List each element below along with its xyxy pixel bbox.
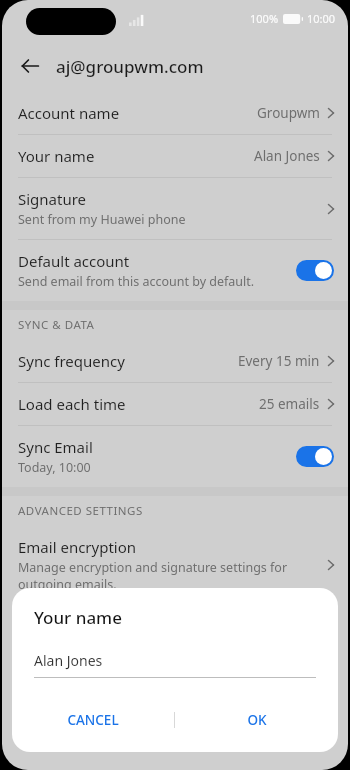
staticText: OK bbox=[247, 711, 267, 729]
staticText: Incoming settings bbox=[18, 615, 145, 635]
staticText: 25 emails bbox=[259, 395, 320, 413]
staticText: Alan Jones bbox=[34, 651, 103, 670]
staticText: SYNC & DATA bbox=[18, 317, 95, 333]
staticText: Alan Jones bbox=[254, 147, 320, 165]
button[interactable]: Back bbox=[10, 46, 50, 86]
button[interactable]: Sync frequency bbox=[2, 340, 348, 382]
staticText: ADVANCED SETTINGS bbox=[18, 503, 143, 519]
button[interactable]: Your name bbox=[2, 135, 348, 177]
staticText: Email encryption bbox=[18, 537, 137, 557]
staticText: Every 15 min bbox=[238, 352, 320, 370]
staticText: Sync Email bbox=[18, 437, 93, 457]
button[interactable]: Incoming settings bbox=[2, 604, 348, 646]
staticText: 10:00 bbox=[307, 11, 336, 26]
button[interactable]: Alan Jones bbox=[34, 651, 316, 678]
button[interactable]: OK bbox=[175, 698, 338, 742]
button[interactable]: Email encryption bbox=[2, 526, 348, 603]
button[interactable]: Account name bbox=[2, 92, 348, 134]
staticText: Default account bbox=[18, 251, 130, 271]
staticText: Send email from this account by default. bbox=[18, 273, 255, 290]
staticText: Manage encryption and signature settings… bbox=[18, 559, 288, 592]
button[interactable]: Default account bbox=[2, 240, 348, 301]
button[interactable]: Toggle bbox=[296, 446, 334, 467]
staticText: Load each time bbox=[18, 394, 126, 414]
staticText: Sent from my Huawei phone bbox=[18, 211, 186, 228]
staticText: Groupwm bbox=[257, 104, 320, 122]
staticText: Account name bbox=[18, 103, 120, 123]
staticText: Your name bbox=[18, 146, 95, 166]
staticText: Sync frequency bbox=[18, 351, 125, 371]
staticText: aj@groupwm.com bbox=[56, 55, 204, 78]
button[interactable]: Sync Email bbox=[2, 426, 348, 487]
staticText: Signature bbox=[18, 189, 87, 209]
staticText: Today, 10:00 bbox=[18, 459, 91, 476]
staticText: Your name bbox=[34, 606, 122, 629]
staticText: 100% bbox=[250, 11, 279, 26]
staticText: CANCEL bbox=[67, 711, 119, 729]
button[interactable]: Signature bbox=[2, 178, 348, 239]
button[interactable]: CANCEL bbox=[12, 698, 174, 742]
button[interactable]: Load each time bbox=[2, 383, 348, 425]
button[interactable]: Toggle bbox=[296, 260, 334, 281]
